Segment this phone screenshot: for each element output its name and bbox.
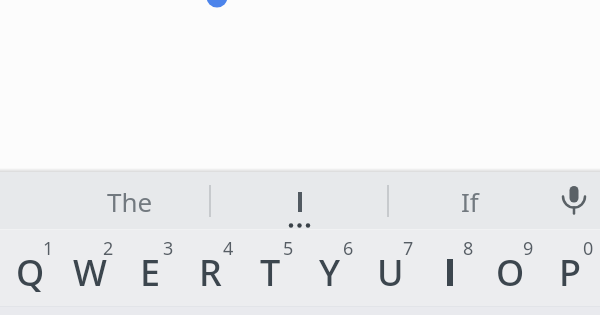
staticText: O	[496, 248, 525, 297]
staticText: 2	[103, 236, 114, 256]
staticText: W	[73, 248, 107, 297]
staticText: 7	[403, 236, 414, 256]
staticText: 0	[583, 236, 594, 256]
staticText: 5	[283, 236, 294, 256]
button[interactable]	[211, 172, 388, 231]
staticText: 3	[163, 236, 174, 256]
staticText: R	[199, 248, 222, 297]
staticText: Y	[319, 248, 341, 297]
staticText: 4	[223, 236, 234, 256]
staticText: The	[107, 184, 153, 219]
button[interactable]: O	[480, 231, 540, 315]
staticText: Q	[16, 248, 45, 297]
button[interactable]	[552, 172, 600, 231]
button[interactable]: R	[180, 231, 240, 315]
staticText: 8	[463, 236, 474, 256]
staticText: 9	[523, 236, 534, 256]
staticText: 1	[43, 236, 54, 256]
staticText: U	[377, 248, 404, 297]
button[interactable]: Q	[0, 231, 60, 315]
button[interactable]: If	[389, 172, 551, 231]
button[interactable]	[420, 231, 480, 315]
button[interactable]: The	[50, 172, 210, 231]
button[interactable]: P	[540, 231, 600, 315]
staticText: P	[559, 248, 581, 297]
staticText: 6	[343, 236, 354, 256]
button[interactable]: Y	[300, 231, 360, 315]
button[interactable]: U	[360, 231, 420, 315]
staticText: If	[461, 184, 479, 219]
button[interactable]: W	[60, 231, 120, 315]
staticText: E	[140, 248, 161, 297]
button[interactable]: E	[120, 231, 180, 315]
button[interactable]: T	[240, 231, 300, 315]
staticText: T	[260, 248, 281, 297]
